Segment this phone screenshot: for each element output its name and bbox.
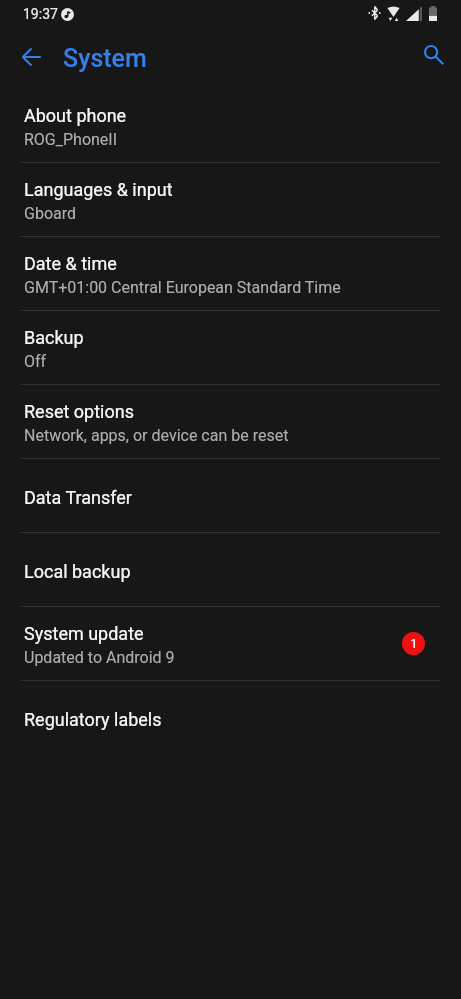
staticText: ROG_PhoneII (24, 130, 118, 149)
button[interactable]: Date & time (0, 237, 461, 310)
button[interactable]: Back (7, 33, 55, 81)
staticText: GMT+01:00 Central European Standard Time (24, 278, 341, 297)
button[interactable]: Search (410, 31, 458, 79)
staticText: System (63, 44, 147, 73)
staticText: Languages & input (24, 179, 173, 200)
staticText: Off (24, 352, 47, 371)
staticText: About phone (24, 105, 127, 126)
staticText: Network, apps, or device can be reset (24, 426, 289, 445)
button[interactable]: Backup (0, 311, 461, 384)
staticText: Backup (24, 327, 84, 348)
button[interactable]: System update (0, 607, 461, 680)
staticText: Regulatory labels (24, 709, 162, 730)
button[interactable]: Data Transfer (0, 459, 461, 532)
staticText: Data Transfer (24, 487, 132, 508)
staticText: 1 (410, 636, 418, 651)
button[interactable]: Languages & input (0, 163, 461, 236)
button[interactable]: Reset options (0, 385, 461, 458)
button[interactable]: Regulatory labels (0, 681, 461, 754)
staticText: 19:37 (23, 6, 58, 22)
button[interactable]: About phone (0, 89, 461, 162)
staticText: Gboard (24, 204, 77, 223)
staticText: Local backup (24, 561, 131, 582)
staticText: Reset options (24, 401, 134, 422)
button[interactable]: Local backup (0, 533, 461, 606)
staticText: System update (24, 623, 144, 644)
staticText: Date & time (24, 253, 117, 274)
staticText: Updated to Android 9 (24, 648, 175, 667)
